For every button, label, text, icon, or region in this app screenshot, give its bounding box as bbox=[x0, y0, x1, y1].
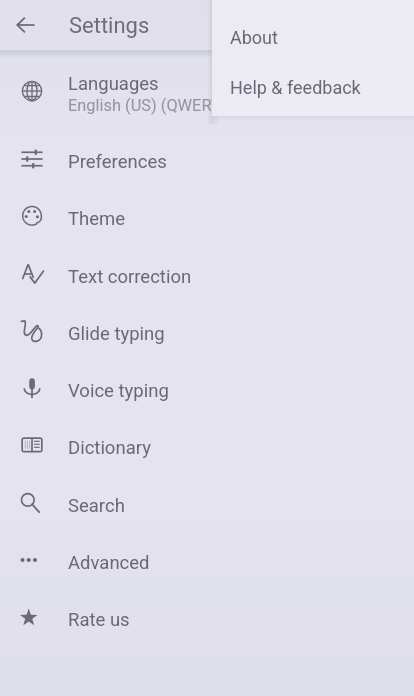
staticText: Preferences bbox=[68, 151, 167, 173]
staticText: Languages bbox=[68, 73, 159, 95]
staticText: Glide typing bbox=[68, 323, 165, 345]
staticText: Dictionary bbox=[68, 437, 151, 459]
staticText: Theme bbox=[68, 208, 126, 230]
staticText: About bbox=[230, 27, 278, 48]
staticText: English (US) (QWERTY) bbox=[68, 96, 237, 115]
button[interactable]: Preferences bbox=[0, 133, 414, 190]
button[interactable]: About bbox=[212, 12, 414, 62]
button[interactable]: Advanced bbox=[0, 534, 414, 591]
staticText: Rate us bbox=[68, 609, 130, 631]
button[interactable]: Languages bbox=[0, 65, 414, 122]
staticText: Search bbox=[68, 495, 125, 517]
button[interactable]: Help & feedback bbox=[212, 62, 414, 112]
button[interactable]: Rate us bbox=[0, 591, 414, 648]
button[interactable]: Theme bbox=[0, 190, 414, 247]
staticText: Voice typing bbox=[68, 380, 169, 402]
button[interactable]: Search bbox=[0, 477, 414, 534]
button[interactable]: Voice typing bbox=[0, 362, 414, 419]
staticText: Settings bbox=[69, 13, 150, 39]
button[interactable]: Text correction bbox=[0, 248, 414, 305]
button[interactable]: Glide typing bbox=[0, 305, 414, 362]
button[interactable]: Dictionary bbox=[0, 419, 414, 476]
staticText: Help & feedback bbox=[230, 77, 361, 98]
button[interactable]: Back bbox=[0, 0, 49, 49]
staticText: Advanced bbox=[68, 552, 150, 574]
staticText: Text correction bbox=[68, 266, 192, 288]
